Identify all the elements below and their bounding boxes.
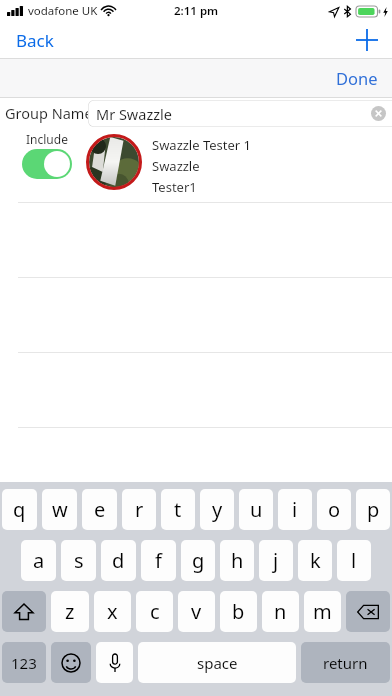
staticText: vodafone UK (28, 3, 98, 19)
staticText: Done (336, 67, 378, 89)
button[interactable]: Clear text (371, 106, 386, 121)
staticText: h (231, 547, 244, 574)
button[interactable]: b (220, 591, 257, 632)
staticText: r (135, 496, 144, 523)
button[interactable]: e (82, 489, 117, 530)
staticText: l (351, 547, 357, 574)
staticText: x (107, 598, 118, 625)
button[interactable]: x (94, 591, 131, 632)
button[interactable]: Back (0, 25, 70, 56)
staticText: j (273, 547, 279, 574)
staticText: t (174, 496, 182, 523)
button[interactable]: m (304, 591, 341, 632)
button[interactable]: n (262, 591, 299, 632)
staticText: v (191, 598, 202, 625)
staticText: Swazzle (152, 157, 200, 175)
staticText: z (65, 598, 75, 625)
staticText: c (150, 598, 160, 625)
staticText: q (13, 496, 26, 523)
staticText: 2:11 pm (174, 3, 219, 19)
button[interactable]: u (239, 489, 273, 530)
staticText: f (155, 547, 162, 574)
staticText: k (310, 547, 321, 574)
button[interactable]: y (200, 489, 234, 530)
staticText: w (52, 496, 68, 523)
staticText: Swazzle Tester 1 (152, 136, 252, 154)
button[interactable]: 123 (2, 642, 46, 683)
button[interactable]: Include (0, 128, 392, 203)
button[interactable]: k (298, 540, 332, 581)
staticText: e (94, 496, 106, 523)
staticText: n (274, 598, 287, 625)
staticText: Include (26, 131, 68, 147)
button[interactable]: Emoji (51, 642, 91, 683)
button[interactable]: l (337, 540, 371, 581)
staticText: swazzletester1@gmail.com (152, 199, 318, 211)
button[interactable]: Include toggle (22, 149, 72, 179)
button[interactable]: w (42, 489, 77, 530)
button[interactable]: g (181, 540, 215, 581)
staticText: 123 (11, 653, 37, 673)
button[interactable]: Shift (2, 591, 46, 632)
button[interactable]: c (136, 591, 173, 632)
staticText: return (323, 653, 368, 673)
staticText: b (232, 598, 245, 625)
button[interactable]: j (259, 540, 293, 581)
button[interactable]: return (301, 642, 390, 683)
button[interactable]: p (356, 489, 390, 530)
button[interactable]: Add (342, 25, 392, 55)
staticText: space (197, 653, 238, 673)
button[interactable]: q (2, 489, 37, 530)
button[interactable]: d (101, 540, 136, 581)
button[interactable]: v (178, 591, 215, 632)
staticText: o (328, 496, 341, 523)
button[interactable]: r (122, 489, 156, 530)
staticText: Back (16, 29, 54, 52)
button[interactable]: space (138, 642, 296, 683)
button[interactable]: h (220, 540, 254, 581)
button[interactable]: Done (322, 61, 392, 95)
staticText: p (367, 496, 380, 523)
staticText: g (192, 547, 205, 574)
button[interactable]: a (21, 540, 56, 581)
staticText: u (250, 496, 263, 523)
staticText: Tester1 (152, 178, 197, 196)
button[interactable]: z (51, 591, 89, 632)
button[interactable]: Backspace (346, 591, 390, 632)
staticText: s (74, 547, 84, 574)
staticText: i (292, 496, 298, 523)
button[interactable]: Mr Swazzle (88, 100, 392, 127)
button[interactable]: Dictate (96, 642, 133, 683)
staticText: Mr Swazzle (96, 104, 172, 124)
button[interactable]: f (141, 540, 176, 581)
staticText: m (313, 598, 332, 625)
button[interactable]: o (317, 489, 351, 530)
staticText: Group Name: (5, 103, 97, 123)
staticText: a (33, 547, 45, 574)
staticText: y (212, 496, 223, 523)
button[interactable]: t (161, 489, 195, 530)
staticText: d (112, 547, 125, 574)
button[interactable]: i (278, 489, 312, 530)
button[interactable]: s (61, 540, 96, 581)
